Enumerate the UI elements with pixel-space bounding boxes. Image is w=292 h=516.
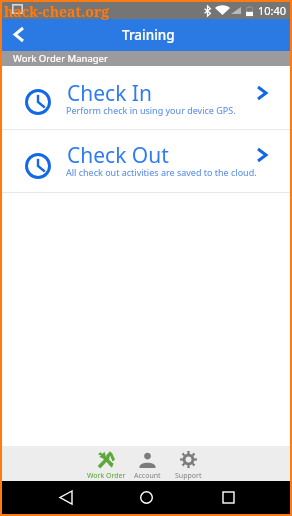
staticText: Check In <box>67 79 152 108</box>
staticText: Work Order <box>87 471 126 481</box>
button[interactable]: Navigate up <box>2 19 38 51</box>
staticText: Support <box>175 471 202 481</box>
staticText: Work Order Manager <box>13 52 108 65</box>
button[interactable]: Account <box>127 446 168 481</box>
button[interactable]: Check Out <box>2 130 290 192</box>
button[interactable]: Check In <box>2 66 290 129</box>
staticText: All check out activities are saved to th… <box>66 166 257 178</box>
staticText: 10:40 <box>258 3 287 18</box>
staticText: Account <box>134 471 161 481</box>
staticText: Check Out <box>67 141 169 170</box>
button[interactable]: Home <box>126 481 166 514</box>
button[interactable]: Back <box>44 481 84 514</box>
button[interactable]: Recent apps <box>208 481 248 514</box>
button[interactable]: Support <box>168 446 208 481</box>
button[interactable]: Work Order <box>85 446 127 481</box>
staticText: hack-cheat.org <box>4 2 110 21</box>
staticText: Training <box>122 26 175 44</box>
staticText: Perform check in using your device GPS. <box>66 104 236 116</box>
